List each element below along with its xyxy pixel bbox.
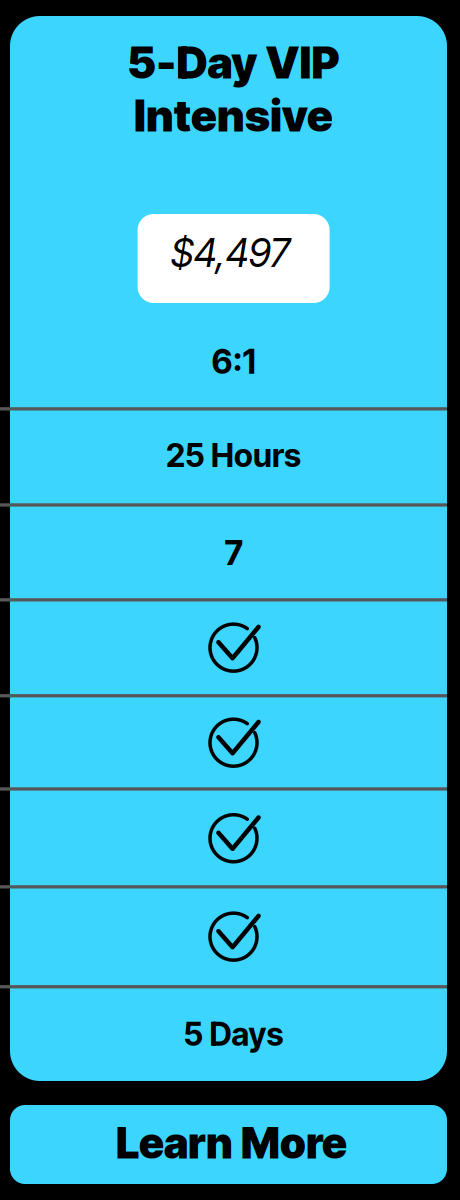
staticText: 5 Days: [183, 1015, 283, 1053]
staticText: 25 Hours: [166, 436, 301, 475]
staticText: $4,497: [171, 230, 290, 276]
button[interactable]: $4,497: [138, 214, 330, 303]
staticText: 6:1: [211, 341, 255, 382]
button[interactable]: Learn More: [10, 1105, 447, 1184]
staticText: Learn More: [116, 1117, 347, 1169]
staticText: Intensive: [134, 89, 333, 142]
staticText: 5-Day VIP: [127, 36, 339, 89]
staticText: 7: [224, 533, 242, 573]
